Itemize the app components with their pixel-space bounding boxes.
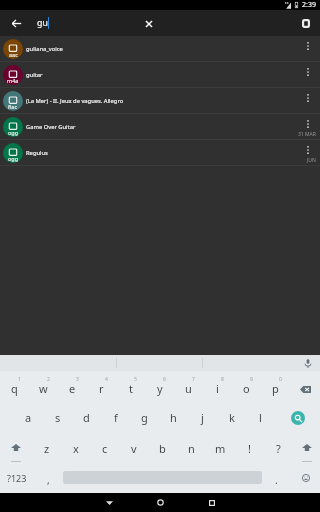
- button[interactable]: x: [61, 432, 90, 462]
- staticText: 4: [105, 376, 108, 383]
- button[interactable]: More options: [302, 40, 314, 52]
- button[interactable]: Voice input: [301, 356, 315, 370]
- button[interactable]: [63, 462, 262, 493]
- staticText: q: [11, 381, 18, 396]
- button[interactable]: ogg: [0, 114, 320, 140]
- button[interactable]: l: [246, 404, 275, 432]
- button[interactable]: More options: [302, 66, 314, 78]
- staticText: ,: [47, 473, 50, 487]
- button[interactable]: v: [119, 432, 148, 462]
- button[interactable]: Emoji: [291, 462, 320, 493]
- button[interactable]: 1: [0, 375, 29, 404]
- staticText: 6: [163, 376, 166, 383]
- button[interactable]: Search: [275, 404, 320, 432]
- staticText: p: [272, 381, 279, 396]
- button[interactable]: ?: [264, 432, 293, 462]
- staticText: n: [188, 441, 195, 456]
- staticText: ?123: [7, 472, 27, 484]
- button[interactable]: Back: [8, 15, 25, 32]
- button[interactable]: Recent apps: [186, 493, 237, 512]
- staticText: 8: [221, 376, 224, 383]
- button[interactable]: 8: [203, 375, 232, 404]
- button[interactable]: More options: [302, 92, 314, 104]
- staticText: b: [159, 441, 166, 456]
- button[interactable]: 4: [87, 375, 116, 404]
- button[interactable]: f: [101, 404, 130, 432]
- button[interactable]: Select all: [297, 15, 314, 32]
- staticText: i: [216, 381, 219, 396]
- staticText: 7: [192, 376, 195, 383]
- staticText: g: [141, 410, 148, 425]
- button[interactable]: a: [14, 404, 43, 432]
- staticText: a: [25, 410, 32, 425]
- staticText: ?: [276, 441, 281, 456]
- staticText: 9: [250, 376, 253, 383]
- staticText: e: [69, 381, 76, 396]
- staticText: (La Mer) - II. Jeux de vagues. Allegro: [26, 97, 124, 105]
- staticText: y: [157, 381, 163, 396]
- staticText: 31 MAR: [298, 131, 316, 138]
- staticText: 5: [134, 376, 137, 383]
- staticText: z: [44, 441, 50, 456]
- staticText: r: [99, 381, 104, 396]
- button[interactable]: flac: [0, 88, 320, 114]
- staticText: o: [243, 381, 250, 396]
- button[interactable]: s: [43, 404, 72, 432]
- button[interactable]: n: [177, 432, 206, 462]
- button[interactable]: Back: [84, 493, 135, 512]
- staticText: 3: [76, 376, 79, 383]
- staticText: c: [102, 441, 108, 456]
- button[interactable]: Clear search: [140, 15, 157, 32]
- staticText: .: [275, 473, 278, 487]
- staticText: f: [114, 410, 118, 425]
- button[interactable]: 7: [174, 375, 203, 404]
- button[interactable]: k: [217, 404, 246, 432]
- staticText: Regulus: [26, 149, 48, 157]
- button[interactable]: Home: [135, 493, 186, 512]
- staticText: k: [229, 410, 235, 425]
- button[interactable]: Shift: [0, 432, 32, 462]
- button[interactable]: 3: [58, 375, 87, 404]
- staticText: j: [201, 410, 204, 425]
- button[interactable]: .: [262, 462, 291, 493]
- button[interactable]: ,: [33, 462, 63, 493]
- button[interactable]: 9: [232, 375, 261, 404]
- button[interactable]: z: [32, 432, 61, 462]
- button[interactable]: d: [72, 404, 101, 432]
- staticText: aac: [9, 51, 18, 58]
- button[interactable]: c: [90, 432, 119, 462]
- button[interactable]: 6: [145, 375, 174, 404]
- button[interactable]: 5: [116, 375, 145, 404]
- staticText: m4a: [7, 77, 19, 84]
- staticText: x: [73, 441, 79, 456]
- button[interactable]: j: [188, 404, 217, 432]
- staticText: JUN: [307, 157, 316, 164]
- button[interactable]: m: [206, 432, 235, 462]
- button[interactable]: 2: [29, 375, 58, 404]
- button[interactable]: !: [235, 432, 264, 462]
- button[interactable]: b: [148, 432, 177, 462]
- staticText: d: [83, 410, 90, 425]
- staticText: w: [39, 381, 48, 396]
- button[interactable]: Backspace: [290, 375, 320, 404]
- staticText: flac: [8, 103, 18, 110]
- button[interactable]: ogg: [0, 140, 320, 166]
- button[interactable]: aac: [0, 36, 320, 62]
- staticText: 2:39: [302, 0, 316, 10]
- button[interactable]: More options: [302, 144, 314, 156]
- staticText: v: [131, 441, 137, 456]
- staticText: !: [248, 441, 251, 456]
- staticText: gu: [37, 17, 48, 29]
- staticText: s: [55, 410, 61, 425]
- button[interactable]: h: [159, 404, 188, 432]
- button[interactable]: 0: [261, 375, 290, 404]
- button[interactable]: g: [130, 404, 159, 432]
- button[interactable]: More options: [302, 118, 314, 130]
- button[interactable]: m4a: [0, 62, 320, 88]
- staticText: t: [129, 381, 133, 396]
- staticText: Game Over Guitar: [26, 123, 76, 131]
- staticText: guliana_voice: [26, 45, 63, 53]
- button[interactable]: ?123: [0, 462, 33, 493]
- button[interactable]: Shift: [293, 432, 320, 462]
- staticText: m: [215, 441, 226, 456]
